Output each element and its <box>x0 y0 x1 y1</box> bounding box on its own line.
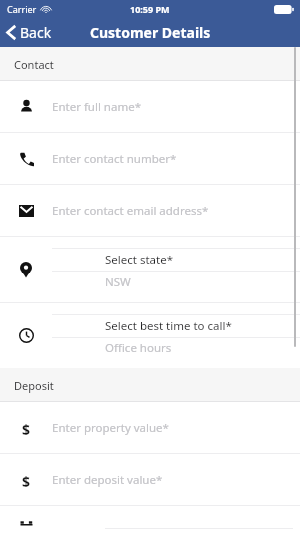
staticText: Select best time to call* <box>105 318 232 334</box>
staticText: Contact <box>14 57 54 72</box>
other: Select best time to call <box>19 328 34 343</box>
staticText: Enter contact number* <box>52 151 177 167</box>
staticText: Select state* <box>105 252 173 268</box>
button[interactable] <box>0 506 300 533</box>
button[interactable]: Select best time to call <box>0 303 300 368</box>
other: Email address <box>19 205 34 217</box>
staticText: Deposit <box>14 378 54 393</box>
button[interactable]: Email address <box>0 185 300 236</box>
staticText: Enter deposit value* <box>52 472 163 488</box>
button[interactable]: Name <box>0 81 300 132</box>
other: Select state <box>20 262 32 278</box>
staticText: Enter contact email address* <box>52 203 209 219</box>
staticText: $ <box>22 472 31 487</box>
other: Phone number <box>19 151 34 166</box>
button[interactable]: Phone number <box>0 133 300 184</box>
button[interactable]: Back <box>0 18 62 47</box>
staticText: Carrier <box>7 3 37 15</box>
staticText: Enter property value* <box>52 420 169 436</box>
button[interactable]: Select state <box>0 237 300 302</box>
button[interactable]: $ <box>0 402 300 453</box>
button[interactable]: $ <box>0 454 300 505</box>
staticText: Back <box>20 23 52 42</box>
staticText: NSW <box>105 274 131 290</box>
staticText: Office hours <box>105 340 172 356</box>
other: Name <box>19 99 34 114</box>
staticText: $ <box>22 420 31 435</box>
staticText: Customer Details <box>90 23 211 42</box>
staticText: 10:59 PM <box>130 3 170 15</box>
staticText: Enter full name* <box>52 99 141 115</box>
